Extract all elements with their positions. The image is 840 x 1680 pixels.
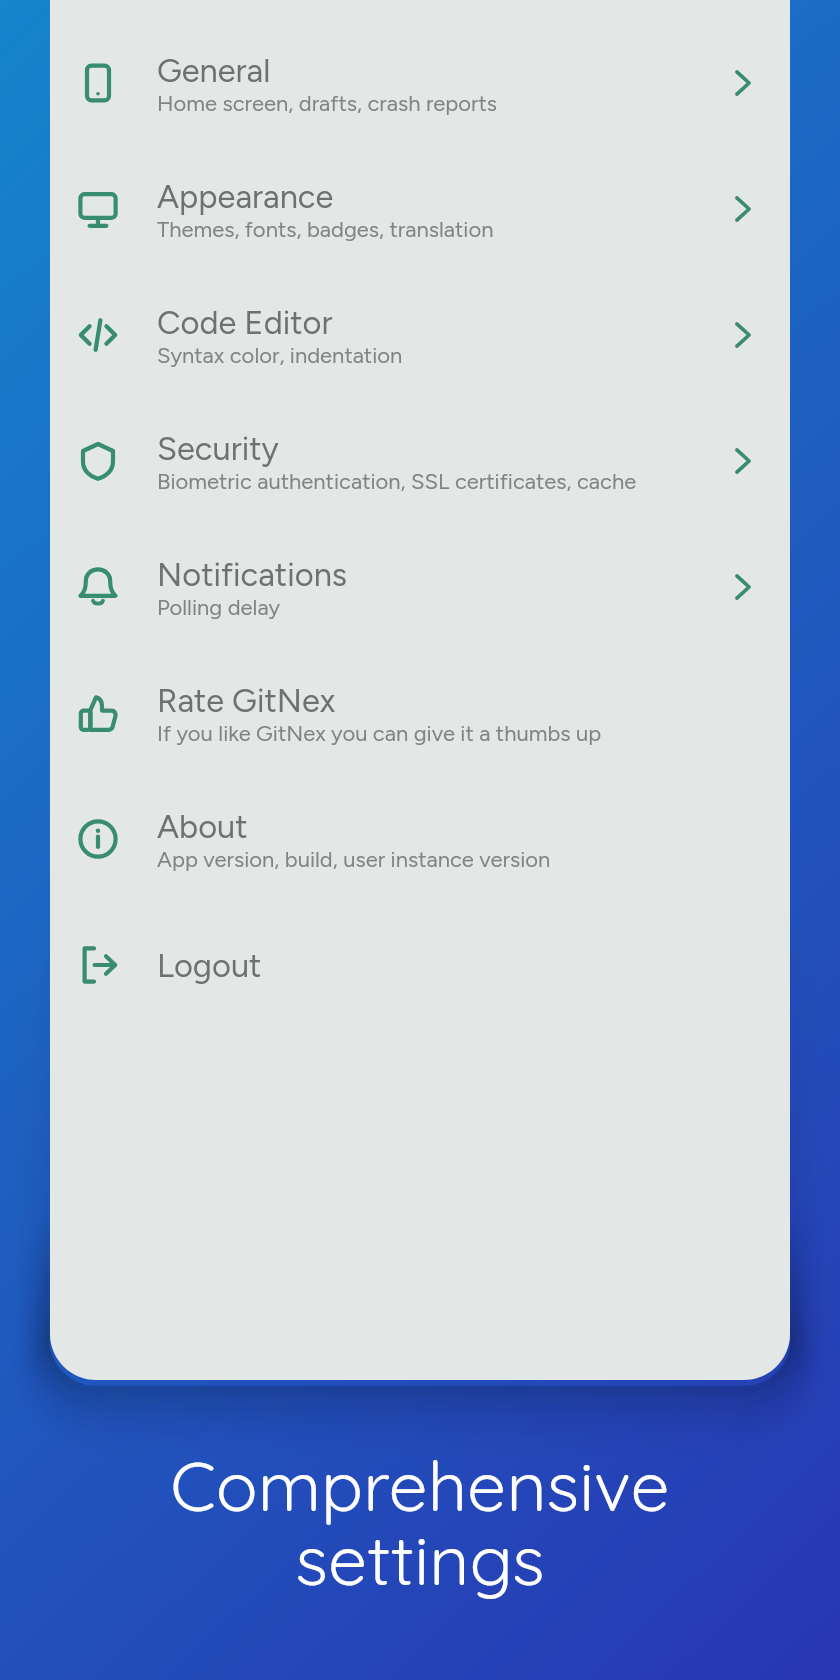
button[interactable]: Rate GitNex (50, 650, 790, 776)
staticText: Home screen, drafts, crash reports (157, 90, 498, 116)
staticText: Comprehensive (170, 1441, 670, 1528)
staticText: Code Editor (157, 303, 333, 342)
staticText: Appearance (157, 177, 334, 216)
button[interactable]: Notifications (50, 524, 790, 650)
staticText: If you like GitNex you can give it a thu… (157, 720, 602, 746)
button[interactable]: Code Editor (50, 272, 790, 398)
staticText: Security (157, 429, 279, 468)
staticText: App version, build, user instance versio… (157, 846, 551, 872)
staticText: Syntax color, indentation (157, 342, 403, 368)
button[interactable]: About (50, 776, 790, 902)
staticText: General (157, 51, 271, 90)
staticText: Biometric authentication, SSL certificat… (157, 468, 637, 494)
button[interactable]: Appearance (50, 146, 790, 272)
staticText: Polling delay (157, 594, 281, 620)
staticText: Rate GitNex (157, 681, 336, 720)
staticText: Logout (157, 946, 262, 985)
staticText: Themes, fonts, badges, translation (157, 216, 494, 242)
button[interactable]: Security (50, 398, 790, 524)
staticText: settings (295, 1515, 545, 1602)
staticText: About (157, 807, 248, 846)
button[interactable]: General (50, 20, 790, 146)
staticText: Notifications (157, 555, 348, 594)
button[interactable]: Logout (50, 902, 790, 1028)
